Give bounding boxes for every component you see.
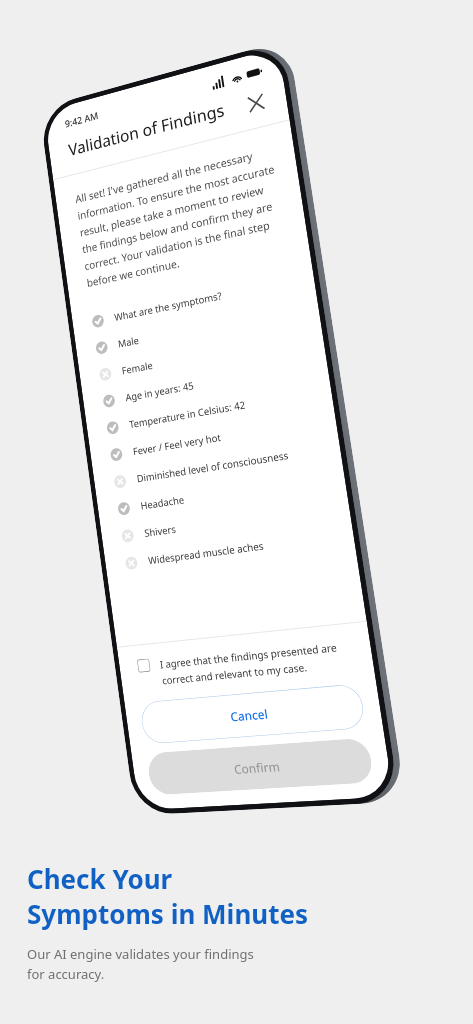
staticText: Our AI engine validates your findings fo… — [27, 945, 254, 983]
staticText: Fever / Feel very hot — [132, 430, 222, 458]
button[interactable]: What are the symptoms? — [71, 262, 316, 339]
staticText: Symptoms in Minutes — [27, 896, 309, 931]
button[interactable]: Widespread muscle aches — [104, 519, 355, 580]
staticText: Male — [117, 333, 140, 351]
button[interactable]: Headache — [97, 461, 347, 525]
button[interactable]: Age in years: 45 — [82, 347, 329, 418]
staticText: Widespread muscle aches — [147, 538, 265, 567]
staticText: 9:42 AM — [64, 108, 100, 130]
staticText: All set! I've gathered all the necessary… — [74, 143, 287, 290]
staticText: Shivers — [143, 522, 177, 540]
button[interactable]: Fever / Feel very hot — [89, 404, 338, 472]
staticText: Confirm — [233, 758, 281, 777]
button[interactable]: Shivers — [100, 490, 351, 552]
staticText: Validation of Findings — [67, 98, 226, 161]
button[interactable]: Diminished level of consciousness — [93, 432, 342, 498]
staticText: Cancel — [229, 705, 270, 724]
button[interactable]: I agree that the findings presented are … — [119, 636, 374, 690]
staticText: Female — [121, 358, 154, 377]
staticText: Temperature in Celsius: 42 — [128, 397, 247, 431]
staticText: Diminished level of consciousness — [136, 448, 290, 485]
staticText: Age in years: 45 — [125, 378, 195, 404]
staticText: What are the symptoms? — [113, 288, 223, 324]
button[interactable]: Close — [241, 87, 270, 119]
staticText: Check Your — [27, 861, 173, 896]
staticText: I agree that the findings presented are … — [159, 638, 353, 686]
button[interactable]: Confirm — [146, 738, 374, 795]
staticText: Headache — [140, 492, 186, 512]
button[interactable]: Male — [75, 290, 320, 365]
button[interactable]: Temperature in Celsius: 42 — [86, 375, 333, 445]
button[interactable]: Female — [78, 318, 324, 392]
button[interactable]: Cancel — [139, 683, 366, 744]
